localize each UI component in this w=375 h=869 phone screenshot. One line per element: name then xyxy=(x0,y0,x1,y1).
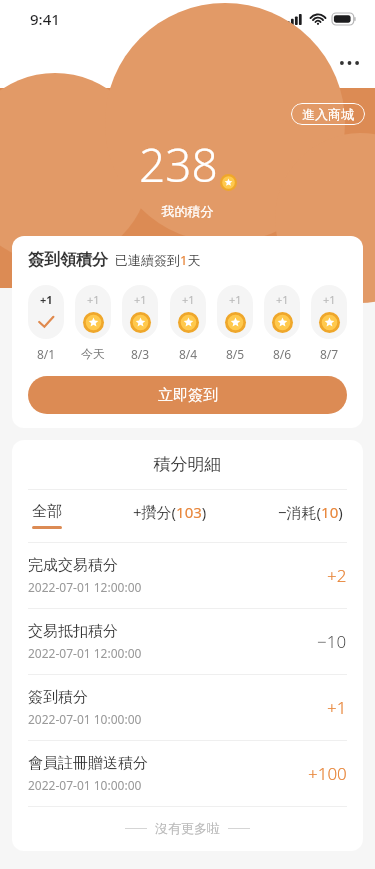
staticText: −10 xyxy=(317,630,347,653)
staticText: 積分明細 xyxy=(12,454,363,475)
staticText: −消耗(10) xyxy=(278,502,343,522)
staticText: +100 xyxy=(308,762,347,785)
staticText: +1 xyxy=(276,292,289,307)
staticText: 立即簽到 xyxy=(158,386,218,405)
staticText: 8/3 xyxy=(131,346,150,362)
staticText: 交易抵扣積分 xyxy=(28,622,118,641)
staticText: +1 xyxy=(40,292,53,307)
button[interactable]: +1 xyxy=(75,285,111,361)
button[interactable]: 立即簽到 xyxy=(28,376,347,414)
staticText: +1 xyxy=(323,292,336,307)
staticText: 沒有更多啦 xyxy=(155,820,220,836)
staticText: 8/4 xyxy=(179,346,198,362)
button[interactable]: 完成交易積分 xyxy=(12,543,363,608)
staticText: 會員註冊贈送積分 xyxy=(28,754,148,773)
staticText: 2022-07-01 10:00:00 xyxy=(28,777,142,793)
staticText: 8/1 xyxy=(37,346,56,362)
button[interactable]: +1 xyxy=(264,285,300,362)
button[interactable]: +1 xyxy=(217,285,253,362)
staticText: 已連續簽到1天 xyxy=(115,251,201,269)
staticText: 今天 xyxy=(81,346,105,361)
staticText: 全部 xyxy=(32,502,62,521)
button[interactable]: +1 xyxy=(122,285,158,362)
staticText: +攢分(103) xyxy=(133,502,207,522)
button[interactable]: +攢分(103) xyxy=(129,490,211,542)
button[interactable]: +1 xyxy=(28,285,64,362)
staticText: +2 xyxy=(327,564,347,587)
button[interactable]: +1 xyxy=(170,285,206,362)
staticText: 我的積分 xyxy=(0,203,375,219)
staticText: +1 xyxy=(327,696,347,719)
staticText: 2022-07-01 12:00:00 xyxy=(28,579,142,595)
button[interactable]: 全部 xyxy=(28,490,66,541)
staticText: +1 xyxy=(134,292,147,307)
staticText: 進入商城 xyxy=(302,106,354,122)
staticText: 2022-07-01 10:00:00 xyxy=(28,711,142,727)
staticText: 8/7 xyxy=(320,346,339,362)
button[interactable]: 交易抵扣積分 xyxy=(12,609,363,674)
staticText: 簽到領積分 xyxy=(28,250,108,270)
staticText: 9:41 xyxy=(30,9,60,29)
button[interactable]: +1 xyxy=(311,285,347,362)
staticText: 完成交易積分 xyxy=(28,556,118,575)
button[interactable]: 簽到積分 xyxy=(12,675,363,740)
staticText: 8/6 xyxy=(273,346,292,362)
staticText: +1 xyxy=(87,292,100,307)
staticText: 238 xyxy=(139,133,218,196)
staticText: +1 xyxy=(182,292,195,307)
button[interactable]: 會員註冊贈送積分 xyxy=(12,741,363,806)
staticText: +1 xyxy=(229,292,242,307)
button[interactable]: 進入商城 xyxy=(291,103,365,125)
staticText: 8/5 xyxy=(226,346,245,362)
staticText: 簽到積分 xyxy=(28,688,88,707)
button[interactable]: −消耗(10) xyxy=(274,490,347,542)
button[interactable]: More options xyxy=(324,47,375,79)
staticText: 2022-07-01 12:00:00 xyxy=(28,645,142,661)
